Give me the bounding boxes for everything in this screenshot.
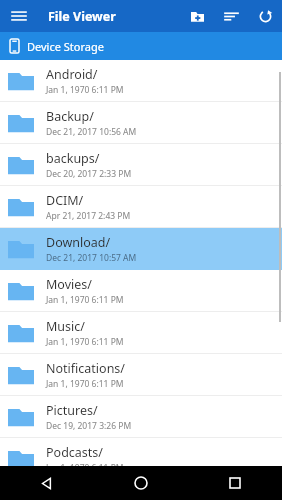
button[interactable]: Android/ (0, 60, 282, 102)
button[interactable]: Backup/ (0, 102, 282, 144)
staticText: Backup/ (46, 108, 94, 125)
button[interactable]: DCIM/ (0, 186, 282, 228)
button[interactable]: Home (94, 466, 188, 500)
staticText: Jan 1, 1970 6:11 PM (46, 84, 124, 96)
button[interactable]: Create new folder (184, 3, 210, 29)
button[interactable]: Notifications/ (0, 354, 282, 396)
button[interactable]: Back (0, 466, 94, 500)
button[interactable]: Recent apps (188, 466, 282, 500)
button[interactable]: Pictures/ (0, 396, 282, 438)
staticText: Dec 21, 2017 10:57 AM (46, 252, 137, 264)
staticText: Music/ (46, 318, 85, 335)
staticText: Notifications/ (46, 360, 126, 377)
button[interactable]: Music/ (0, 312, 282, 354)
staticText: Dec 21, 2017 10:56 AM (46, 126, 137, 138)
staticText: DCIM/ (46, 192, 84, 209)
button[interactable]: Refresh (252, 3, 278, 29)
button[interactable]: backups/ (0, 144, 282, 186)
staticText: Jan 1, 1970 6:11 PM (46, 294, 124, 306)
staticText: File Viewer (48, 8, 116, 25)
staticText: backups/ (46, 150, 100, 167)
staticText: Dec 19, 2017 3:26 PM (46, 420, 132, 432)
staticText: Pictures/ (46, 402, 98, 419)
button[interactable]: Sort (218, 3, 244, 29)
button[interactable]: Movies/ (0, 270, 282, 312)
staticText: Jan 1, 1970 6:11 PM (46, 462, 124, 474)
staticText: Apr 21, 2017 2:43 PM (46, 210, 131, 222)
staticText: Podcasts/ (46, 444, 103, 461)
button[interactable]: Podcasts/ (0, 438, 282, 480)
staticText: Android/ (46, 66, 98, 83)
staticText: Dec 20, 2017 2:33 PM (46, 168, 132, 180)
button[interactable]: Device Storage (0, 32, 282, 60)
staticText: Movies/ (46, 276, 92, 293)
button[interactable]: Open navigation drawer (6, 3, 32, 29)
staticText: Jan 1, 1970 6:11 PM (46, 378, 124, 390)
staticText: Jan 1, 1970 6:11 PM (46, 336, 124, 348)
staticText: Device Storage (27, 39, 104, 54)
staticText: Download/ (46, 234, 111, 251)
button[interactable]: Download/ (0, 228, 282, 270)
